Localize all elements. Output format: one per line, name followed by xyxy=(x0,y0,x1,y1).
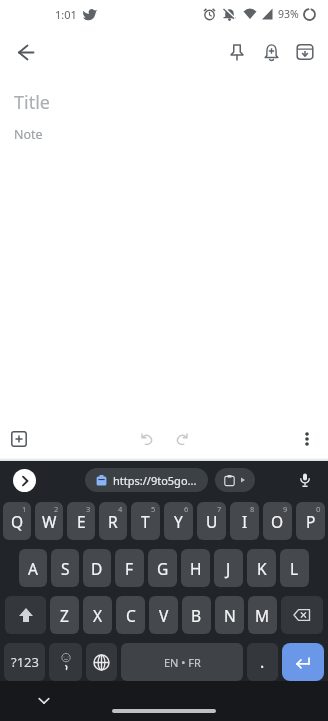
button[interactable]: U xyxy=(197,502,226,540)
button[interactable]: P xyxy=(296,502,325,540)
staticText: O xyxy=(271,511,284,532)
button[interactable]: F xyxy=(115,549,144,587)
button[interactable]: V xyxy=(149,596,178,634)
button[interactable] xyxy=(86,643,117,681)
button[interactable] xyxy=(215,468,255,492)
staticText: T xyxy=(141,511,150,532)
staticText: L xyxy=(290,558,299,579)
staticText: M xyxy=(255,605,270,626)
button[interactable] xyxy=(254,35,288,69)
staticText: Title xyxy=(14,90,50,115)
staticText: V xyxy=(159,605,169,626)
button[interactable]: EN • FR xyxy=(121,643,243,681)
button[interactable]: Z xyxy=(50,596,79,634)
button[interactable] xyxy=(13,469,36,492)
button[interactable]: C xyxy=(116,596,145,634)
button[interactable]: M xyxy=(248,596,277,634)
staticText: 1 xyxy=(22,504,27,514)
staticText: 1:01 xyxy=(55,7,77,22)
staticText: 0 xyxy=(316,504,321,514)
button[interactable] xyxy=(292,467,318,493)
button[interactable]: Y xyxy=(164,502,193,540)
button[interactable] xyxy=(292,424,322,454)
staticText: B xyxy=(191,605,202,626)
staticText: W xyxy=(42,511,57,532)
button[interactable] xyxy=(4,424,34,454)
staticText: G xyxy=(157,558,169,579)
button[interactable]: ?123 xyxy=(4,643,45,681)
button[interactable]: . xyxy=(247,643,278,681)
button[interactable]: A xyxy=(19,549,47,587)
button[interactable] xyxy=(5,596,46,634)
button[interactable]: B xyxy=(182,596,211,634)
staticText: P xyxy=(306,511,316,532)
button[interactable] xyxy=(49,643,82,681)
button[interactable] xyxy=(288,35,322,69)
button[interactable]: N xyxy=(215,596,244,634)
staticText: 3 xyxy=(86,504,91,514)
staticText: https://9to5go... xyxy=(113,473,197,488)
staticText: 7 xyxy=(217,504,222,514)
button[interactable]: H xyxy=(181,549,210,587)
button[interactable] xyxy=(281,596,323,634)
button[interactable]: J xyxy=(214,549,243,587)
staticText: . xyxy=(260,651,265,673)
staticText: 5 xyxy=(151,504,156,514)
staticText: R xyxy=(108,511,118,532)
staticText: Y xyxy=(174,511,183,532)
staticText: 6 xyxy=(184,504,189,514)
button[interactable]: O xyxy=(263,502,292,540)
button[interactable]: Title xyxy=(14,76,314,420)
button[interactable]: G xyxy=(148,549,177,587)
button[interactable]: Q xyxy=(3,502,31,540)
staticText: J xyxy=(226,558,231,579)
staticText: I xyxy=(242,511,248,532)
staticText: 8 xyxy=(250,504,255,514)
staticText: K xyxy=(257,558,267,579)
button[interactable]: E xyxy=(67,502,95,540)
staticText: F xyxy=(125,558,134,579)
staticText: 4 xyxy=(118,504,123,514)
button[interactable]: T xyxy=(131,502,160,540)
button[interactable] xyxy=(282,643,324,681)
staticText: EN • FR xyxy=(164,655,201,670)
button[interactable] xyxy=(166,423,198,455)
staticText: A xyxy=(28,558,38,579)
staticText: 9 xyxy=(283,504,288,514)
staticText: S xyxy=(61,558,70,579)
staticText: 93% xyxy=(278,7,299,21)
button[interactable]: I xyxy=(230,502,259,540)
staticText: C xyxy=(126,605,136,626)
button[interactable]: W xyxy=(35,502,63,540)
button[interactable]: https://9to5go... xyxy=(85,468,208,492)
staticText: X xyxy=(93,605,103,626)
staticText: N xyxy=(224,605,236,626)
staticText: E xyxy=(77,511,86,532)
staticText: Q xyxy=(11,511,24,532)
staticText: Note xyxy=(14,126,43,143)
button[interactable]: S xyxy=(51,549,79,587)
staticText: H xyxy=(190,558,202,579)
staticText: ?123 xyxy=(11,653,39,671)
staticText: Z xyxy=(60,605,69,626)
button[interactable]: D xyxy=(83,549,111,587)
button[interactable]: K xyxy=(247,549,276,587)
button[interactable] xyxy=(8,34,44,70)
button[interactable]: X xyxy=(83,596,112,634)
button[interactable] xyxy=(220,35,254,69)
button[interactable] xyxy=(31,688,57,714)
button[interactable]: L xyxy=(280,549,309,587)
button[interactable] xyxy=(130,423,162,455)
staticText: U xyxy=(206,511,218,532)
button[interactable]: R xyxy=(99,502,127,540)
staticText: D xyxy=(91,558,103,579)
staticText: 2 xyxy=(54,504,59,514)
